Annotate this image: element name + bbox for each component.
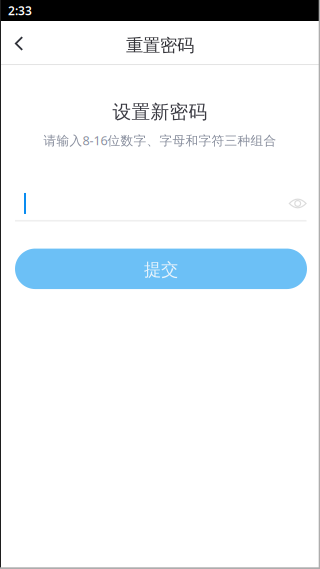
button[interactable]: Show password [272,193,306,214]
button[interactable]: 提交 [15,249,307,289]
staticText: 提交 [144,259,178,281]
staticText: 重置密码 [126,35,194,56]
staticText: 请输入8-16位数字、字母和字符三种组合 [43,132,276,149]
button[interactable]: Back [0,21,36,64]
staticText: 2:33 [8,2,32,18]
staticText: 设置新密码 [112,100,207,124]
